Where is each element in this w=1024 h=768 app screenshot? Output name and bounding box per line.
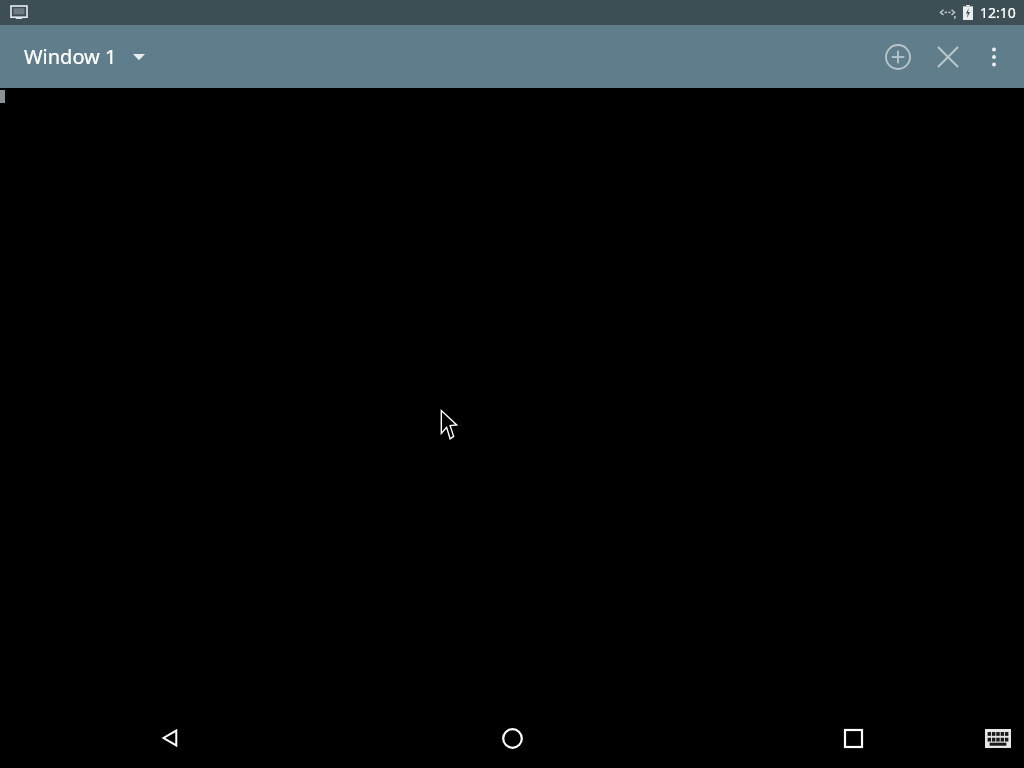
- button[interactable]: Switch keyboard: [976, 716, 1020, 760]
- button[interactable]: Close window: [924, 33, 972, 81]
- staticText: Window 1: [24, 43, 117, 70]
- button[interactable]: Window 1: [14, 35, 155, 78]
- button[interactable]: More options: [972, 35, 1016, 79]
- button[interactable]: Home: [342, 708, 683, 768]
- button[interactable]: Add window: [874, 33, 922, 81]
- button[interactable]: Recent apps: [683, 708, 1024, 768]
- button[interactable]: Back: [0, 708, 342, 768]
- staticText: 12:10: [980, 3, 1016, 22]
